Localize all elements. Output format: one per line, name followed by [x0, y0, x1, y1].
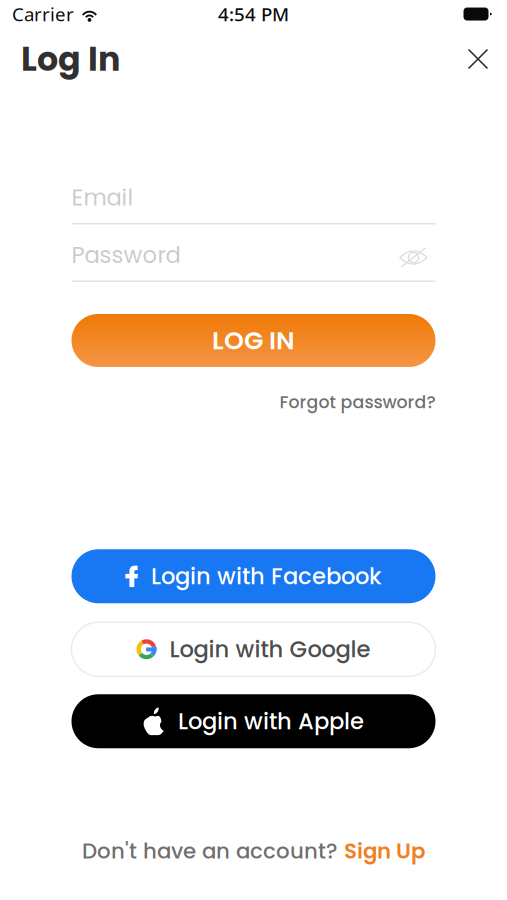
- button[interactable]: Login with Google: [71, 622, 435, 676]
- staticText: Login with Facebook: [151, 560, 382, 592]
- button[interactable]: Login with Apple: [71, 694, 435, 748]
- staticText: Email: [71, 182, 133, 213]
- staticText: LOG IN: [212, 323, 295, 358]
- button[interactable]: Login with Facebook: [71, 549, 435, 603]
- button[interactable]: Close: [459, 40, 497, 78]
- staticText: Log In: [21, 36, 120, 82]
- staticText: Password: [71, 239, 180, 271]
- button[interactable]: Forgot password?: [279, 390, 435, 414]
- button[interactable]: Don't have an account?: [82, 836, 425, 866]
- staticText: Carrier: [12, 2, 74, 26]
- button[interactable]: LOG IN: [71, 314, 435, 367]
- staticText: Login with Google: [169, 633, 370, 665]
- staticText: Forgot password?: [279, 390, 435, 414]
- button[interactable]: Show password: [391, 237, 435, 272]
- staticText: Sign Up: [344, 836, 425, 866]
- staticText: Don't have an account?: [82, 836, 337, 866]
- staticText: Login with Apple: [178, 705, 364, 737]
- staticText: 4:54 PM: [218, 2, 289, 26]
